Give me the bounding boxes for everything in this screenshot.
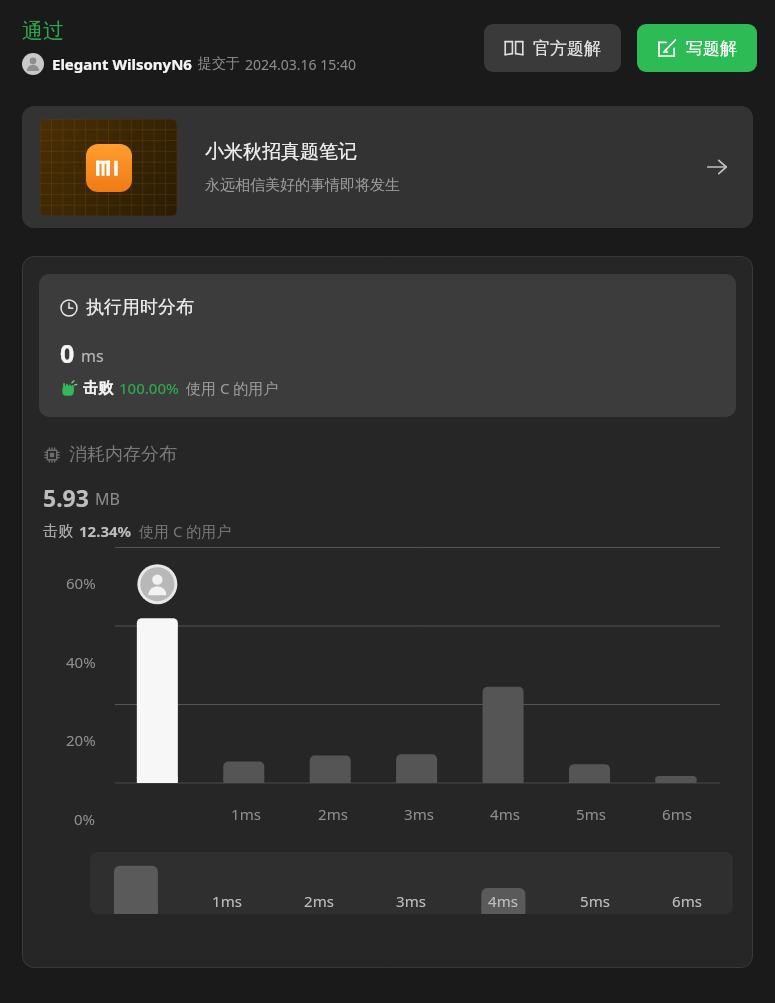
- staticText: 60%: [66, 573, 96, 593]
- staticText: 执行用时分布: [86, 296, 194, 319]
- staticText: 5.93: [43, 482, 89, 513]
- staticText: 3ms: [396, 891, 426, 911]
- button[interactable]: 写题解: [637, 24, 757, 72]
- staticText: 4ms: [488, 891, 518, 911]
- staticText: 永远相信美好的事情即将发生: [205, 176, 400, 195]
- staticText: 2ms: [304, 891, 334, 911]
- staticText: 5ms: [576, 804, 606, 824]
- staticText: 2024.03.16 15:40: [245, 55, 356, 74]
- button[interactable]: 官方题解: [484, 24, 621, 72]
- staticText: 提交于: [198, 55, 240, 73]
- staticText: 12.34%: [79, 521, 132, 541]
- button[interactable]: 执行用时分布: [39, 274, 736, 417]
- staticText: 写题解: [686, 38, 737, 59]
- staticText: 4ms: [490, 804, 520, 824]
- staticText: 通过: [22, 18, 64, 44]
- button[interactable]: 小米秋招真题笔记: [22, 106, 753, 228]
- staticText: MB: [95, 488, 120, 510]
- button[interactable]: 打开: [699, 149, 735, 185]
- staticText: ms: [81, 345, 104, 367]
- staticText: 击败: [43, 522, 73, 541]
- staticText: 消耗内存分布: [69, 443, 177, 466]
- staticText: 1ms: [231, 804, 261, 824]
- staticText: Elegant WilsonyN6: [52, 54, 192, 74]
- staticText: 2ms: [318, 804, 348, 824]
- staticText: 使用 C 的用户: [186, 378, 279, 398]
- staticText: 3ms: [404, 804, 434, 824]
- staticText: 0%: [74, 809, 96, 829]
- staticText: 击败: [83, 379, 113, 398]
- staticText: 1ms: [212, 891, 242, 911]
- staticText: 小米秋招真题笔记: [205, 140, 357, 164]
- staticText: 20%: [66, 730, 96, 750]
- staticText: 官方题解: [533, 38, 601, 59]
- staticText: 100.00%: [119, 378, 179, 398]
- staticText: 6ms: [672, 891, 702, 911]
- staticText: 5ms: [580, 891, 610, 911]
- staticText: 0: [60, 336, 75, 370]
- staticText: 40%: [66, 652, 96, 672]
- button[interactable]: 1ms: [90, 852, 733, 914]
- staticText: 6ms: [662, 804, 692, 824]
- staticText: 使用 C 的用户: [139, 521, 232, 541]
